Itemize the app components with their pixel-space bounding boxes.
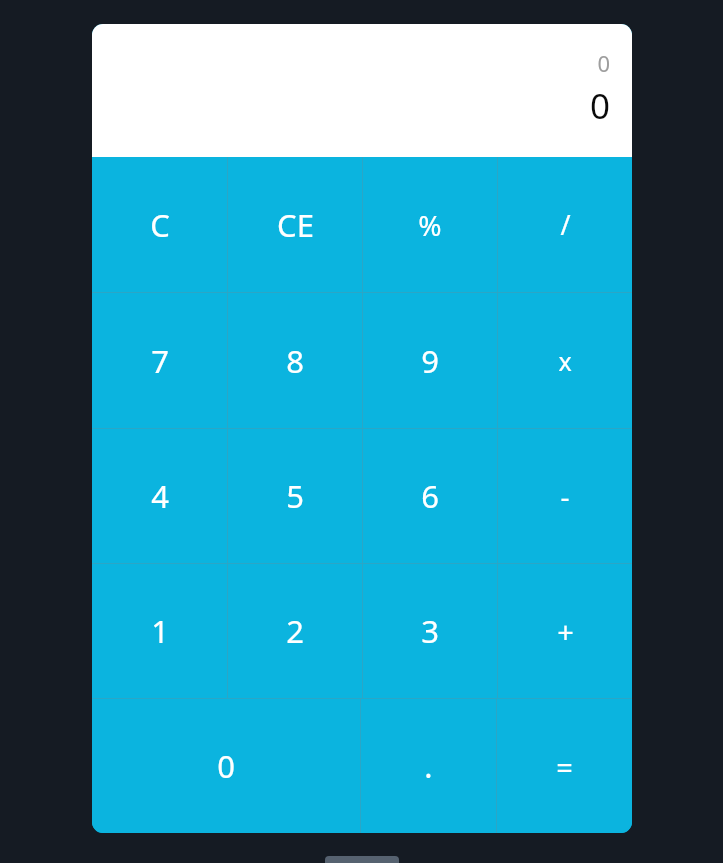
button[interactable]: % [363, 157, 497, 292]
staticText: x [558, 344, 572, 378]
button[interactable]: 8 [228, 293, 362, 428]
button[interactable]: 9 [363, 293, 497, 428]
staticText: 2 [286, 610, 304, 652]
staticText: + [557, 612, 574, 651]
staticText: 1 [151, 610, 169, 652]
button[interactable]: 0 [92, 699, 360, 833]
staticText: C [150, 204, 170, 246]
button[interactable]: 1 [92, 564, 227, 698]
button[interactable]: . [361, 699, 496, 833]
staticText: % [418, 206, 442, 244]
button[interactable]: - [498, 429, 632, 563]
staticText: 3 [421, 610, 439, 652]
button[interactable]: = [497, 699, 632, 833]
button[interactable]: x [498, 293, 632, 428]
staticText: 0 [589, 82, 610, 130]
button[interactable]: 7 [92, 293, 227, 428]
staticText: 8 [286, 340, 304, 382]
staticText: 0 [217, 745, 235, 787]
staticText: CE [277, 204, 314, 246]
staticText: = [556, 747, 573, 786]
staticText: 7 [151, 340, 169, 382]
button[interactable]: + [498, 564, 632, 698]
staticText: 4 [151, 475, 169, 517]
staticText: 5 [286, 475, 304, 517]
button[interactable]: 5 [228, 429, 362, 563]
button[interactable]: 3 [363, 564, 497, 698]
button[interactable]: 6 [363, 429, 497, 563]
button[interactable]: CE [228, 157, 362, 292]
staticText: 9 [421, 340, 439, 382]
button[interactable]: 4 [92, 429, 227, 563]
staticText: . [424, 745, 433, 787]
button[interactable]: C [92, 157, 227, 292]
staticText: 6 [421, 475, 439, 517]
staticText: - [560, 477, 570, 515]
button[interactable]: 2 [228, 564, 362, 698]
staticText: / [560, 206, 571, 243]
other: Home gesture [325, 856, 399, 863]
staticText: 0 [597, 48, 610, 78]
button[interactable]: / [498, 157, 632, 292]
